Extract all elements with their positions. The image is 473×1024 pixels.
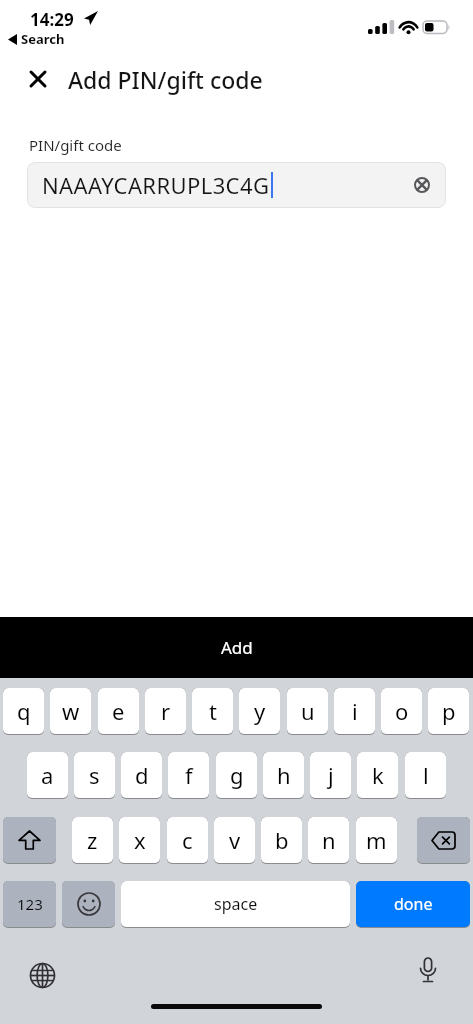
staticText: r bbox=[161, 696, 171, 726]
staticText: j bbox=[328, 760, 334, 790]
button[interactable]: h bbox=[263, 752, 304, 799]
staticText: v bbox=[229, 825, 241, 855]
staticText: 14:29 bbox=[30, 8, 74, 31]
staticText: o bbox=[395, 696, 409, 726]
button[interactable]: v bbox=[214, 817, 255, 864]
staticText: l bbox=[423, 760, 429, 790]
button[interactable]: done bbox=[356, 881, 470, 928]
button[interactable]: z bbox=[72, 817, 113, 864]
button[interactable]: o bbox=[381, 688, 422, 735]
staticText: k bbox=[372, 760, 384, 790]
staticText: u bbox=[301, 696, 315, 726]
button[interactable]: j bbox=[310, 752, 351, 799]
button[interactable]: c bbox=[167, 817, 208, 864]
button[interactable]: Search bbox=[8, 30, 65, 48]
button[interactable]: p bbox=[428, 688, 469, 735]
button[interactable]: l bbox=[405, 752, 446, 799]
button[interactable] bbox=[412, 956, 444, 988]
staticText: n bbox=[322, 825, 336, 855]
button[interactable]: 123 bbox=[3, 881, 56, 928]
button[interactable]: a bbox=[27, 752, 68, 799]
staticText: 123 bbox=[17, 894, 43, 914]
button[interactable]: y bbox=[239, 688, 280, 735]
staticText: x bbox=[134, 825, 146, 855]
staticText: f bbox=[185, 760, 193, 790]
button[interactable]: n bbox=[308, 817, 349, 864]
button[interactable]: Add bbox=[0, 617, 473, 678]
button[interactable] bbox=[3, 817, 56, 864]
button[interactable]: k bbox=[357, 752, 398, 799]
staticText: h bbox=[277, 760, 291, 790]
staticText: NAAAYCARRUPL3C4G bbox=[42, 170, 270, 200]
button[interactable]: m bbox=[356, 817, 397, 864]
staticText: w bbox=[62, 696, 80, 726]
staticText: m bbox=[366, 825, 387, 855]
staticText: Search bbox=[21, 30, 65, 48]
button[interactable]: g bbox=[216, 752, 257, 799]
staticText: t bbox=[209, 696, 217, 726]
staticText: Add bbox=[221, 636, 253, 659]
staticText: Add PIN/gift code bbox=[68, 64, 263, 95]
button[interactable]: space bbox=[121, 881, 350, 928]
button[interactable]: i bbox=[334, 688, 375, 735]
button[interactable]: e bbox=[98, 688, 139, 735]
button[interactable] bbox=[26, 959, 58, 991]
button[interactable]: q bbox=[3, 688, 44, 735]
staticText: q bbox=[17, 696, 31, 726]
staticText: g bbox=[230, 760, 244, 790]
staticText: c bbox=[182, 825, 193, 855]
button[interactable]: r bbox=[145, 688, 186, 735]
button[interactable]: u bbox=[287, 688, 328, 735]
staticText: i bbox=[352, 696, 358, 726]
staticText: PIN/gift code bbox=[29, 135, 122, 155]
staticText: y bbox=[254, 696, 266, 726]
button[interactable] bbox=[417, 817, 470, 864]
button[interactable]: d bbox=[121, 752, 162, 799]
button[interactable]: NAAAYCARRUPL3C4G bbox=[27, 162, 446, 208]
staticText: a bbox=[41, 760, 54, 790]
button[interactable]: w bbox=[50, 688, 91, 735]
staticText: z bbox=[87, 825, 98, 855]
staticText: space bbox=[214, 893, 258, 915]
button[interactable]: s bbox=[74, 752, 115, 799]
button[interactable]: t bbox=[192, 688, 233, 735]
staticText: done bbox=[394, 893, 433, 915]
staticText: s bbox=[89, 760, 100, 790]
staticText: p bbox=[442, 696, 456, 726]
button[interactable]: b bbox=[261, 817, 302, 864]
button[interactable] bbox=[62, 881, 115, 928]
staticText: d bbox=[135, 760, 149, 790]
button[interactable]: f bbox=[168, 752, 209, 799]
button[interactable] bbox=[24, 65, 52, 93]
staticText: e bbox=[112, 696, 125, 726]
staticText: b bbox=[275, 825, 289, 855]
button[interactable]: x bbox=[119, 817, 160, 864]
